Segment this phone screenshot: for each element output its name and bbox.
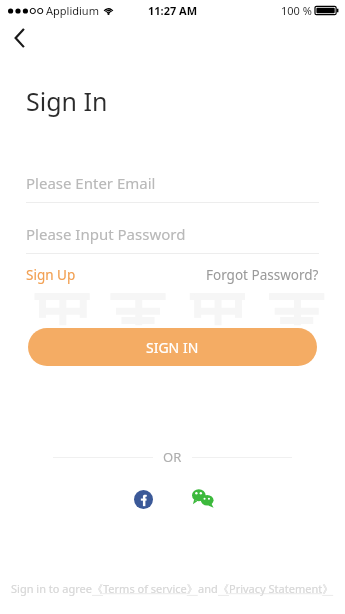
- button[interactable]: Sign Up: [26, 264, 76, 286]
- staticText: Please Input Password: [26, 224, 186, 244]
- staticText: SIGN IN: [146, 338, 199, 357]
- staticText: Sign In: [26, 84, 108, 118]
- staticText: Sign Up: [26, 266, 76, 284]
- staticText: Forgot Password?: [206, 266, 319, 284]
- button[interactable]: Back: [4, 24, 44, 52]
- staticText: Sign in to agree: [11, 581, 92, 596]
- staticText: 11:27 AM: [148, 3, 198, 18]
- button[interactable]: Sign in to agree: [11, 581, 334, 596]
- button[interactable]: SIGN IN: [28, 328, 317, 366]
- button[interactable]: Sign in with WeChat: [190, 486, 216, 512]
- button[interactable]: Please Input Password: [26, 214, 319, 254]
- staticText: 《Terms of service》: [92, 581, 198, 596]
- staticText: Please Enter Email: [26, 173, 156, 193]
- staticText: 100 %: [281, 3, 312, 18]
- button[interactable]: Please Enter Email: [26, 163, 319, 203]
- button[interactable]: Sign in with Facebook: [130, 486, 156, 512]
- staticText: Applidium: [46, 3, 99, 18]
- staticText: OR: [163, 448, 182, 466]
- button[interactable]: Forgot Password?: [206, 264, 319, 286]
- staticText: and: [198, 581, 218, 596]
- staticText: 《Privacy Statement》: [218, 581, 334, 596]
